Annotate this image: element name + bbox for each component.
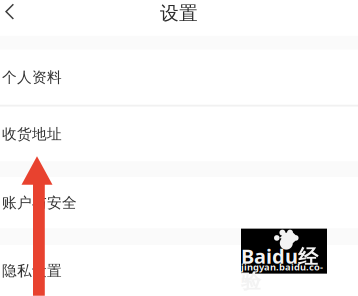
button[interactable]: 隐私设置 (0, 245, 358, 296)
button[interactable]: Back (0, 0, 27, 36)
staticText: 收货地址 (2, 125, 62, 143)
staticText: Baidu经验 (241, 243, 318, 294)
staticText: 隐私设置 (2, 262, 62, 280)
staticText: jingyan.baidu.com (241, 261, 323, 285)
staticText: 个人资料 (2, 68, 62, 86)
staticText: 账户与安全 (2, 194, 77, 212)
button[interactable]: 个人资料 (0, 50, 358, 105)
button[interactable]: 账户与安全 (0, 177, 358, 228)
staticText: 设置 (160, 2, 198, 25)
button[interactable]: 收货地址 (0, 107, 358, 161)
